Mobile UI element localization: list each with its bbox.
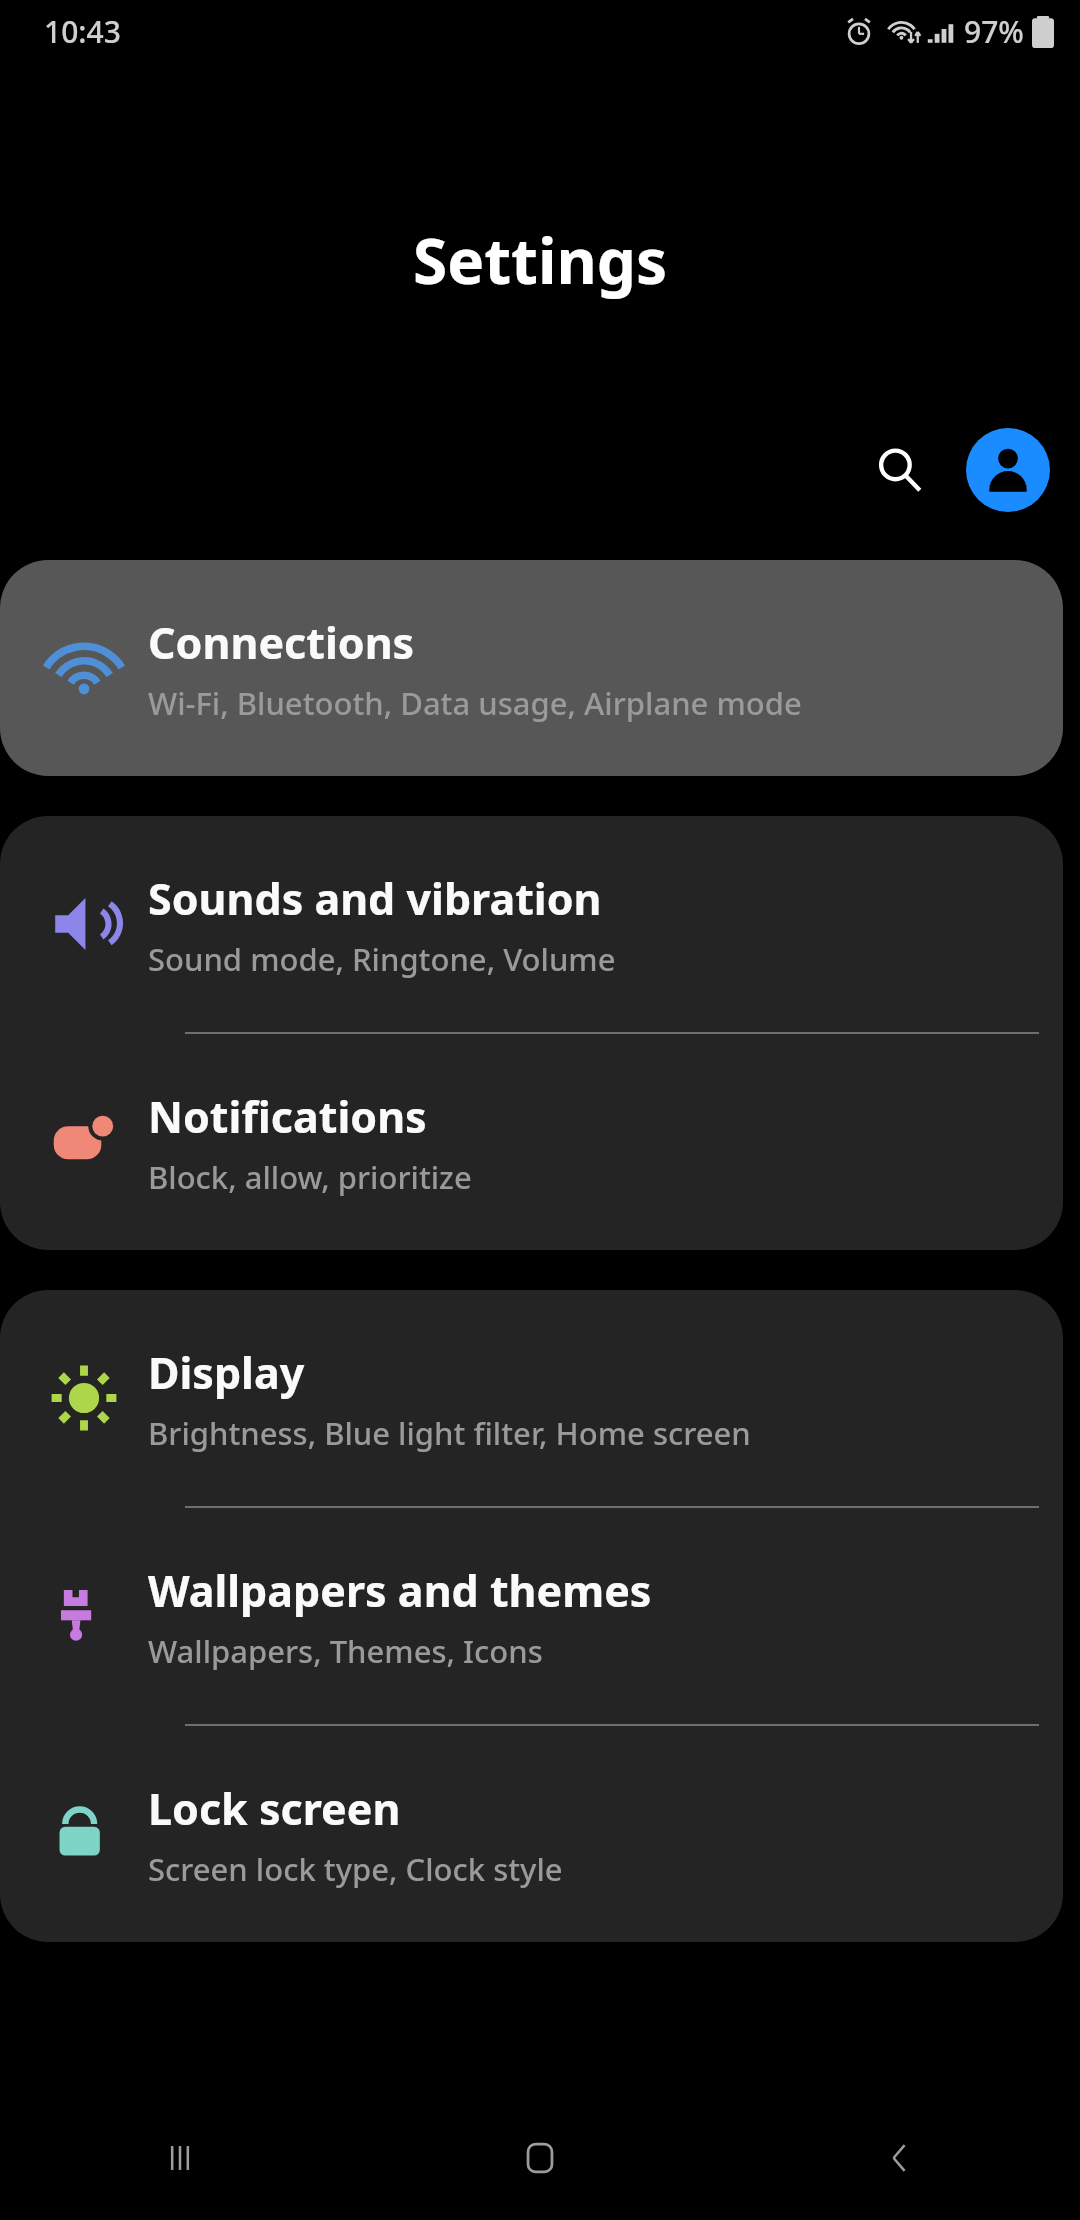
staticText: Wi-Fi, Bluetooth, Data usage, Airplane m… xyxy=(148,682,802,724)
staticText: Wallpapers, Themes, Icons xyxy=(148,1630,543,1672)
button[interactable]: Display xyxy=(0,1290,1063,1506)
staticText: Sounds and vibration xyxy=(148,869,602,928)
staticText: Lock screen xyxy=(148,1779,401,1838)
button[interactable]: Back xyxy=(720,2095,1080,2220)
staticText: 10:43 xyxy=(44,11,121,52)
button[interactable]: Lock screen xyxy=(0,1726,1063,1942)
staticText: Brightness, Blue light filter, Home scre… xyxy=(148,1412,751,1454)
staticText: Block, allow, prioritize xyxy=(148,1156,472,1198)
staticText: Display xyxy=(148,1343,305,1402)
staticText: Screen lock type, Clock style xyxy=(148,1848,563,1890)
staticText: 97% xyxy=(964,11,1024,52)
staticText: Notifications xyxy=(148,1087,427,1146)
button[interactable]: Home xyxy=(360,2095,720,2220)
button[interactable]: Sounds and vibration xyxy=(0,816,1063,1032)
button[interactable]: Notifications xyxy=(0,1034,1063,1250)
staticText: Sound mode, Ringtone, Volume xyxy=(148,938,616,980)
button[interactable]: Connections xyxy=(0,560,1063,776)
button[interactable]: Search xyxy=(854,424,946,516)
button[interactable]: Recents xyxy=(0,2095,360,2220)
staticText: Connections xyxy=(148,613,415,672)
button[interactable]: Wallpapers and themes xyxy=(0,1508,1063,1724)
button[interactable]: Account xyxy=(966,428,1050,512)
staticText: Wallpapers and themes xyxy=(148,1561,652,1620)
staticText: Settings xyxy=(413,218,668,302)
